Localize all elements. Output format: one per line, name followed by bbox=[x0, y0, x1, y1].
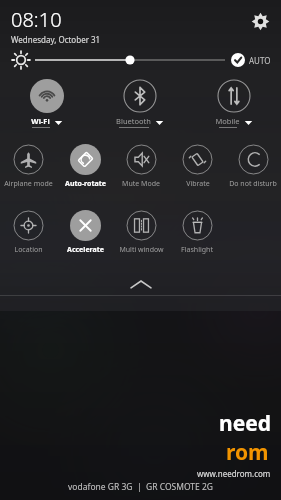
staticText: Wednesday, October 31 bbox=[11, 34, 101, 45]
button[interactable]: Accelerate bbox=[67, 210, 104, 255]
button[interactable]: Location bbox=[13, 210, 44, 255]
staticText: Do not disturb bbox=[229, 179, 277, 189]
staticText: Wi-Fi bbox=[31, 116, 50, 126]
button[interactable]: Multi window bbox=[119, 210, 164, 255]
button[interactable]: Wi-Fi bbox=[30, 79, 64, 128]
staticText: www.needrom.com bbox=[197, 468, 271, 479]
button[interactable]: Settings bbox=[247, 8, 273, 34]
staticText: Airplane mode bbox=[4, 179, 53, 189]
button[interactable]: Mute Mode bbox=[122, 144, 160, 189]
button[interactable]: Collapse panel bbox=[0, 273, 281, 295]
button[interactable]: Auto-rotate bbox=[65, 144, 106, 189]
button[interactable] bbox=[35, 50, 225, 70]
button[interactable]: Vibrate bbox=[182, 144, 213, 189]
button[interactable]: Airplane mode bbox=[4, 144, 53, 189]
staticText: vodafone GR 3G | GR COSMOTE 2G bbox=[68, 481, 214, 493]
staticText: Accelerate bbox=[67, 245, 104, 255]
staticText: Bluetooth bbox=[116, 116, 151, 126]
button[interactable]: Bluetooth bbox=[116, 79, 164, 128]
button[interactable]: Brightness bbox=[10, 49, 32, 71]
staticText: rom bbox=[226, 438, 269, 467]
staticText: Mobile bbox=[215, 116, 240, 126]
staticText: need bbox=[219, 409, 271, 438]
staticText: Auto-rotate bbox=[65, 179, 106, 189]
button[interactable]: AUTO bbox=[231, 53, 271, 67]
staticText: Mute Mode bbox=[122, 179, 160, 189]
staticText: Location bbox=[14, 245, 43, 255]
staticText: Multi window bbox=[119, 245, 164, 255]
staticText: Flashlight bbox=[181, 245, 213, 255]
staticText: AUTO bbox=[249, 55, 271, 66]
staticText: Vibrate bbox=[186, 179, 210, 189]
button[interactable]: Do not disturb bbox=[229, 144, 277, 189]
button[interactable]: Flashlight bbox=[181, 210, 213, 255]
staticText: 08:10 bbox=[11, 6, 62, 33]
button[interactable]: Mobile bbox=[215, 79, 253, 128]
